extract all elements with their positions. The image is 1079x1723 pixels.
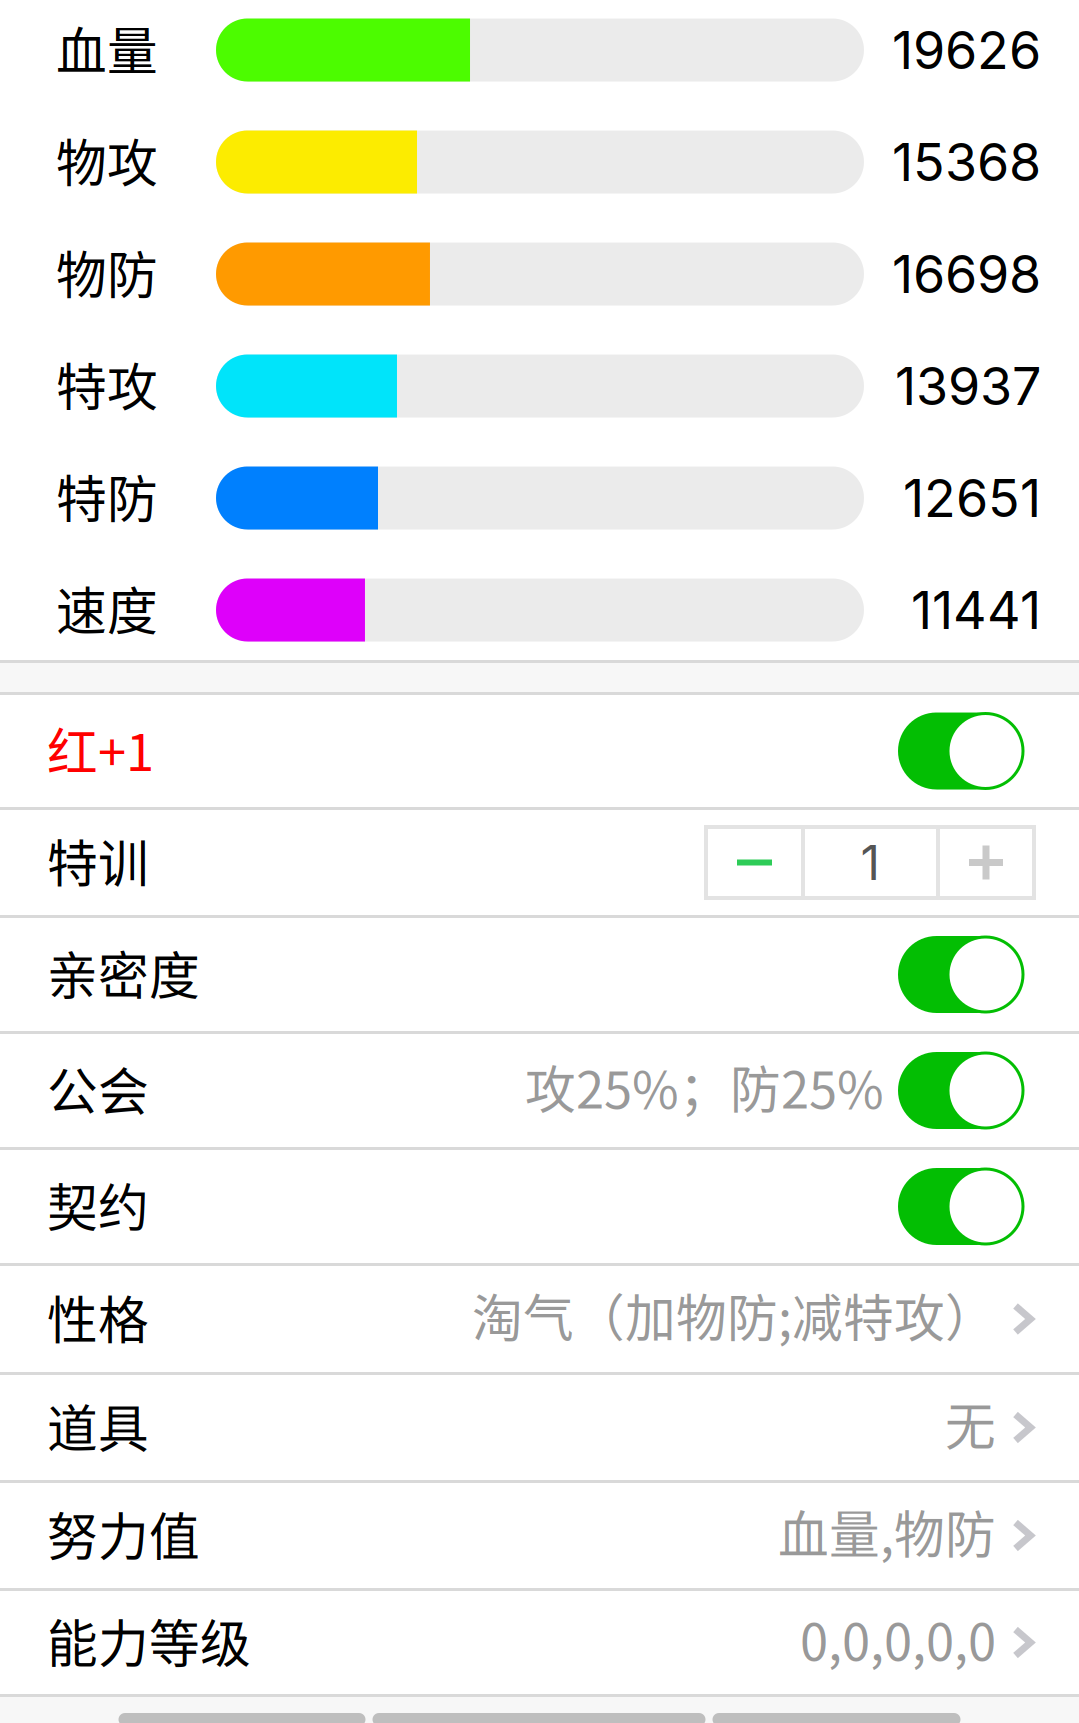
staticText: 15368 (892, 130, 1041, 193)
staticText: 亲密度 (47, 936, 200, 1009)
staticText: 道具 (47, 1389, 149, 1462)
staticText: 能力等级 (47, 1604, 251, 1677)
staticText: 19626 (892, 18, 1041, 81)
button[interactable]: 契约 (0, 1150, 1079, 1266)
staticText: 16698 (892, 242, 1041, 305)
staticText: 特训 (47, 824, 149, 897)
button[interactable]: Next (712, 1713, 960, 1723)
staticText: 13937 (895, 354, 1041, 417)
staticText: 血量 (56, 11, 158, 85)
button[interactable]: 努力值 (0, 1483, 1079, 1591)
staticText: 血量,物防 (778, 1495, 996, 1568)
button[interactable]: 公会 (0, 1034, 1079, 1150)
staticText: 红+1 (47, 712, 154, 786)
button[interactable]: 能力等级 (0, 1591, 1079, 1697)
staticText: 特防 (56, 459, 158, 533)
staticText: 物防 (56, 235, 158, 309)
button[interactable]: Decrease (706, 827, 803, 898)
staticText: 12651 (903, 466, 1041, 529)
button[interactable]: 契约 开关 (898, 1168, 1034, 1245)
button[interactable]: 性格 (0, 1266, 1079, 1375)
staticText: 0,0,0,0,0 (800, 1602, 996, 1675)
button[interactable]: Increase (938, 827, 1034, 898)
staticText: 契约 (47, 1168, 149, 1241)
button[interactable]: 红+1 开关 (898, 712, 1034, 789)
staticText: 11441 (911, 578, 1041, 641)
button[interactable]: 公会 开关 (898, 1052, 1034, 1129)
staticText: 特攻 (56, 347, 158, 421)
staticText: 速度 (56, 571, 158, 645)
staticText: 淘气（加物防;减特攻） (472, 1278, 996, 1352)
staticText: 无 (945, 1387, 996, 1460)
button[interactable]: Previous (118, 1713, 365, 1723)
staticText: 1 (860, 833, 880, 892)
staticText: 攻25%；防25% (525, 1050, 884, 1123)
button[interactable]: Select (372, 1713, 705, 1723)
button[interactable]: 道具 (0, 1375, 1079, 1483)
staticText: 公会 (47, 1052, 149, 1125)
staticText: 性格 (47, 1280, 149, 1354)
staticText: 努力值 (47, 1497, 200, 1570)
staticText: 物攻 (56, 123, 158, 197)
button[interactable]: 红+1 (0, 695, 1079, 810)
button[interactable]: 亲密度 (0, 918, 1079, 1034)
button[interactable]: 亲密度 开关 (898, 936, 1034, 1013)
button[interactable]: 特训 (0, 810, 1079, 918)
